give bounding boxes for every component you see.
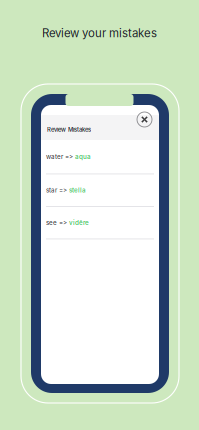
staticText: star: [46, 186, 59, 194]
staticText: >: [69, 153, 75, 161]
staticText: Review your mistakes: [42, 26, 157, 40]
staticText: see: [46, 219, 59, 226]
button[interactable]: see: [41, 207, 159, 239]
button[interactable]: star: [41, 174, 159, 206]
staticText: vidēre: [69, 219, 89, 226]
staticText: Review Mistakes: [47, 126, 91, 133]
staticText: >: [63, 219, 69, 226]
staticText: =: [59, 219, 63, 226]
staticText: =: [65, 153, 69, 161]
button[interactable]: Close: [136, 111, 153, 128]
staticText: water: [46, 153, 65, 161]
staticText: stella: [69, 186, 86, 194]
staticText: aqua: [75, 153, 91, 161]
staticText: =: [59, 186, 63, 194]
button[interactable]: water: [41, 140, 159, 174]
staticText: >: [63, 186, 69, 194]
